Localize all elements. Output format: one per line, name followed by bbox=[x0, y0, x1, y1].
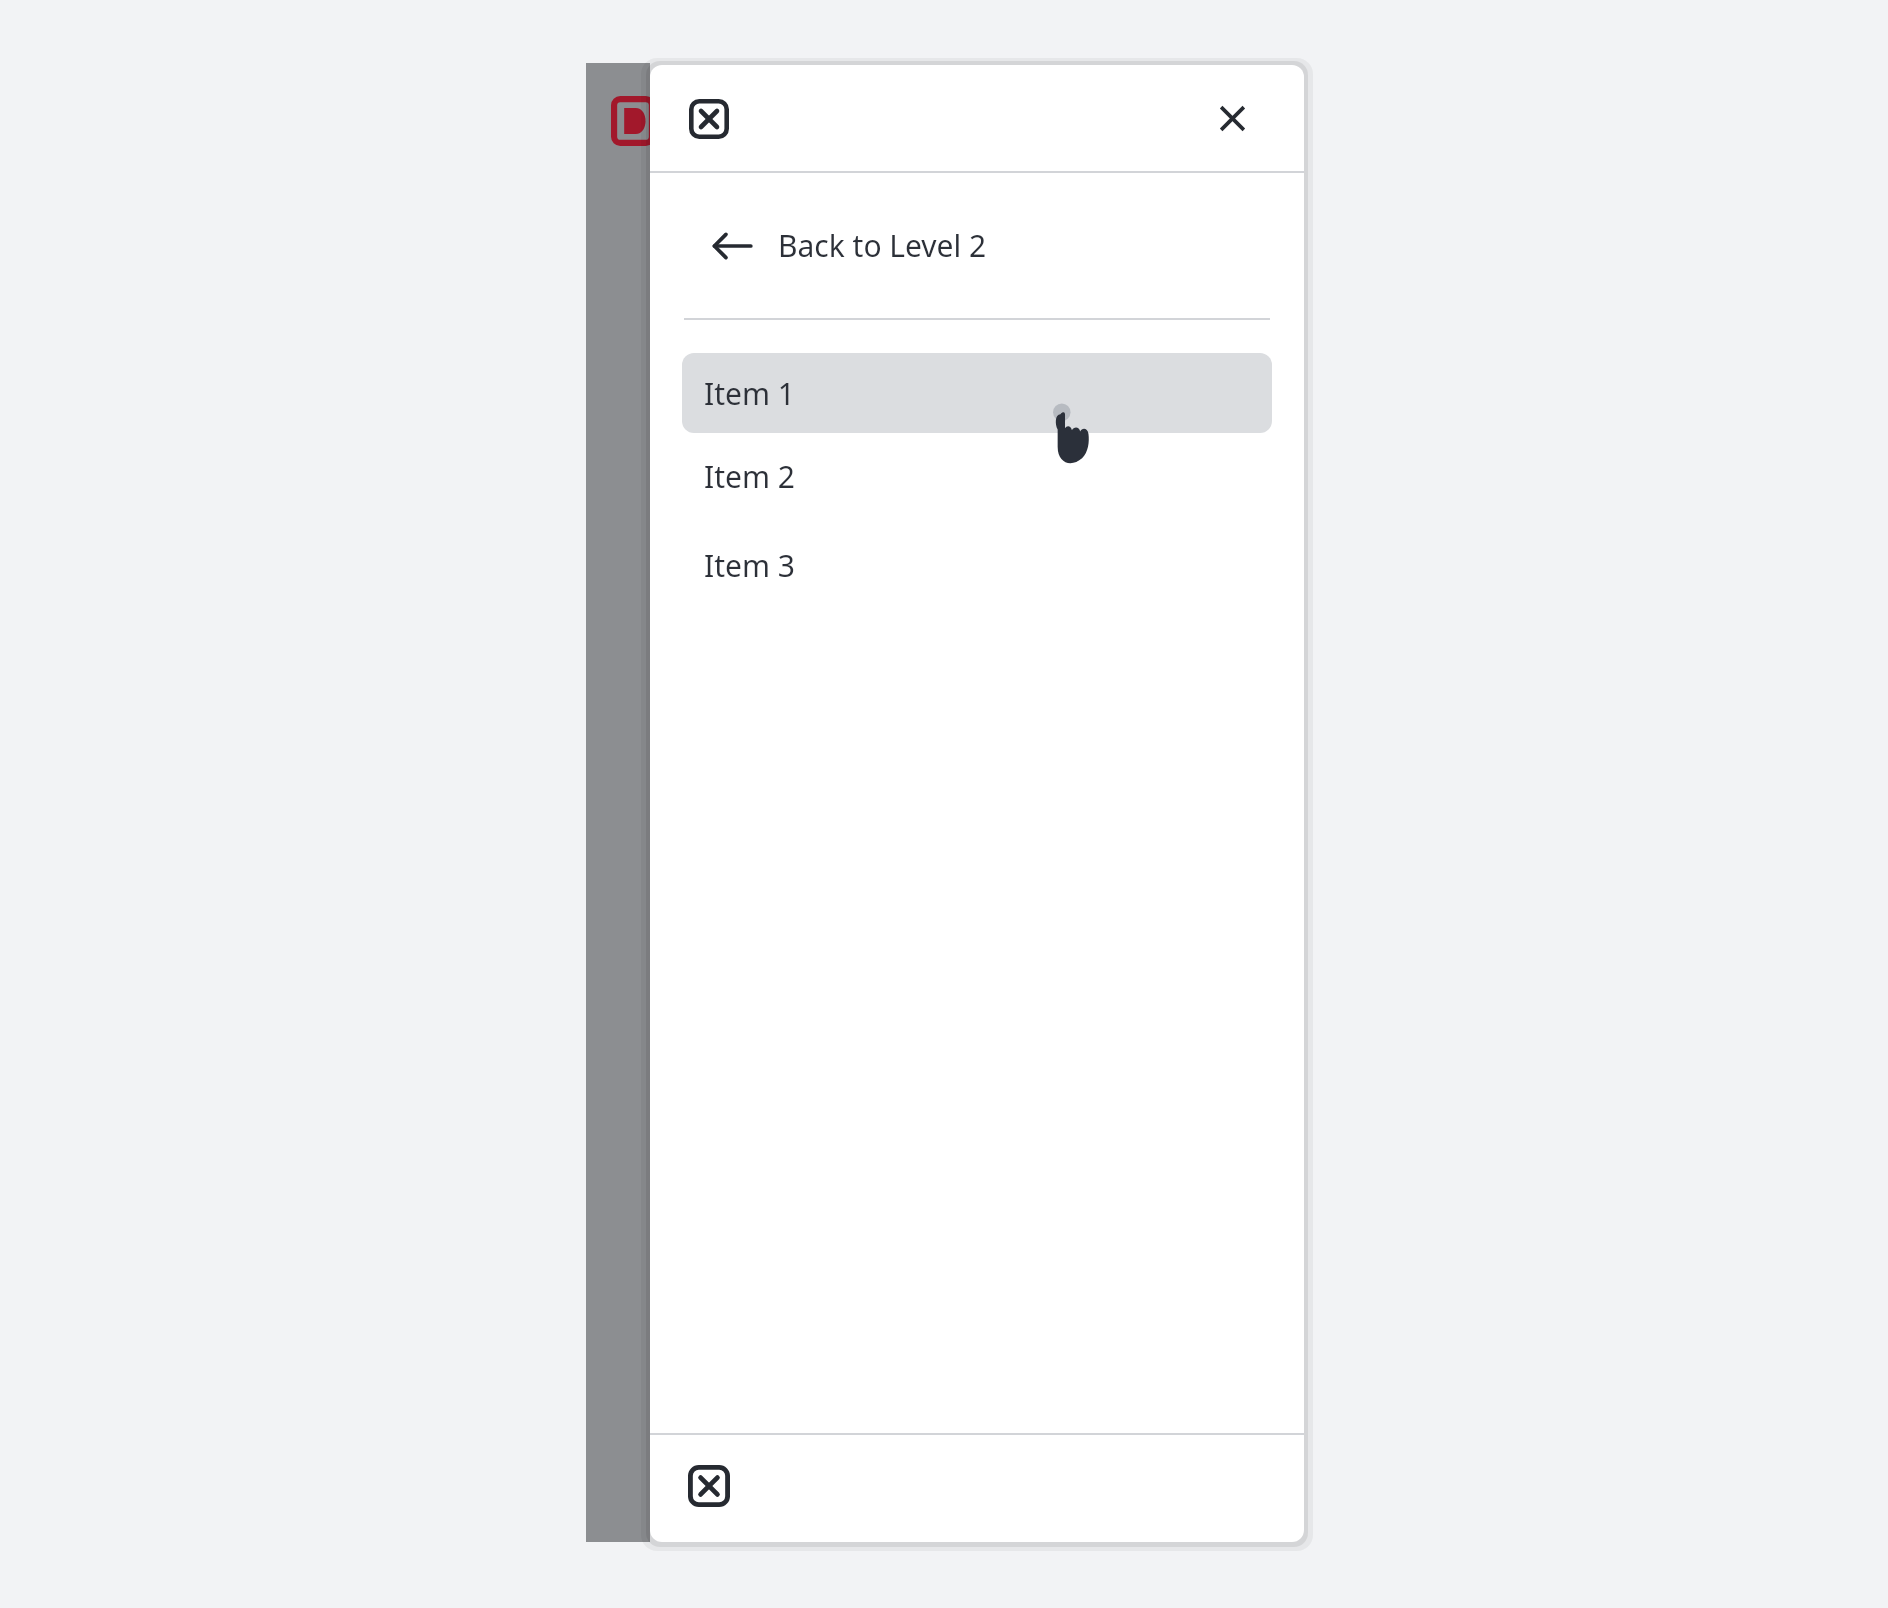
staticText: Item 1 bbox=[704, 373, 795, 414]
button[interactable]: Item 3 bbox=[682, 519, 1272, 611]
button[interactable]: Close dialog bbox=[682, 92, 736, 146]
button[interactable]: Item 1 bbox=[682, 353, 1272, 433]
staticText: Back to Level 2 bbox=[778, 225, 987, 266]
staticText: Item 3 bbox=[704, 545, 795, 586]
button[interactable]: Item 2 bbox=[682, 433, 1272, 519]
button[interactable]: Close bbox=[1208, 94, 1256, 142]
staticText: Item 2 bbox=[704, 456, 795, 497]
button[interactable]: Close dialog bbox=[682, 1459, 736, 1513]
button[interactable]: Back to Level 2 bbox=[650, 173, 1304, 318]
